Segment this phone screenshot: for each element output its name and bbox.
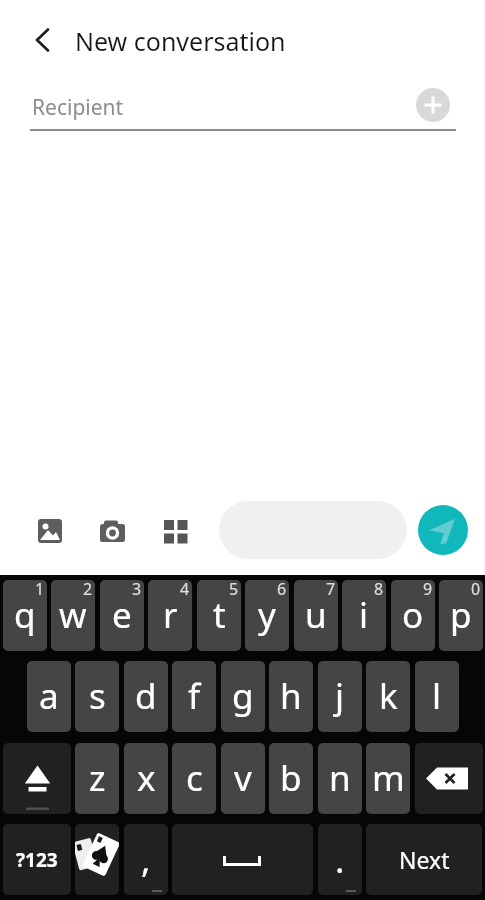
staticText: q: [14, 591, 36, 639]
staticText: b: [280, 754, 302, 802]
staticText: 4: [180, 580, 190, 600]
button[interactable]: [418, 505, 468, 555]
staticText: 2: [83, 580, 93, 600]
staticText: k: [379, 672, 398, 720]
staticText: n: [329, 754, 351, 802]
button[interactable]: i: [342, 580, 386, 651]
button[interactable]: g: [221, 661, 265, 732]
button[interactable]: [219, 501, 407, 559]
button[interactable]: ?123: [3, 824, 71, 895]
staticText: p: [450, 591, 472, 639]
staticText: d: [135, 672, 157, 720]
button[interactable]: r: [148, 580, 192, 651]
button[interactable]: c: [172, 743, 216, 814]
button[interactable]: v: [221, 743, 265, 814]
staticText: r: [163, 591, 178, 639]
staticText: z: [89, 754, 106, 802]
button[interactable]: .: [318, 824, 362, 895]
staticText: t: [213, 591, 226, 639]
staticText: ?123: [16, 847, 58, 873]
staticText: 9: [423, 580, 433, 600]
button[interactable]: [96, 515, 128, 547]
button[interactable]: t: [197, 580, 241, 651]
button[interactable]: f: [172, 661, 216, 732]
staticText: e: [112, 591, 132, 639]
button[interactable]: d: [124, 661, 168, 732]
staticText: 8: [374, 580, 384, 600]
staticText: New conversation: [75, 24, 286, 58]
staticText: s: [89, 672, 106, 720]
staticText: l: [432, 672, 442, 720]
button[interactable]: p: [439, 580, 483, 651]
button[interactable]: [75, 824, 119, 895]
button[interactable]: u: [294, 580, 338, 651]
staticText: x: [137, 754, 156, 802]
staticText: y: [258, 591, 276, 639]
button[interactable]: Recipient: [30, 82, 456, 130]
staticText: w: [59, 591, 87, 639]
staticText: h: [280, 672, 302, 720]
button[interactable]: l: [415, 661, 459, 732]
button[interactable]: [34, 515, 66, 547]
staticText: 7: [326, 580, 336, 600]
button[interactable]: o: [391, 580, 435, 651]
staticText: Recipient: [32, 93, 124, 122]
button[interactable]: Next: [366, 824, 482, 895]
staticText: 5: [229, 580, 239, 600]
staticText: g: [232, 672, 254, 720]
button[interactable]: e: [100, 580, 144, 651]
button[interactable]: s: [75, 661, 119, 732]
staticText: 1: [35, 580, 45, 600]
staticText: ,: [141, 836, 151, 884]
staticText: f: [188, 672, 201, 720]
button[interactable]: [28, 25, 58, 55]
staticText: j: [335, 672, 345, 720]
button[interactable]: z: [75, 743, 119, 814]
button[interactable]: [172, 824, 313, 895]
staticText: 6: [277, 580, 287, 600]
staticText: o: [402, 591, 424, 639]
staticText: m: [372, 754, 405, 802]
staticText: i: [359, 591, 369, 639]
staticText: c: [186, 754, 203, 802]
button[interactable]: n: [318, 743, 362, 814]
button[interactable]: m: [366, 743, 410, 814]
button[interactable]: ,: [124, 824, 168, 895]
staticText: 3: [132, 580, 142, 600]
button[interactable]: j: [318, 661, 362, 732]
staticText: u: [305, 591, 327, 639]
staticText: a: [39, 672, 59, 720]
staticText: .: [335, 836, 345, 884]
button[interactable]: w: [51, 580, 95, 651]
button[interactable]: k: [366, 661, 410, 732]
button[interactable]: q: [3, 580, 47, 651]
button[interactable]: x: [124, 743, 168, 814]
staticText: 0: [471, 580, 481, 600]
button[interactable]: y: [245, 580, 289, 651]
button[interactable]: [3, 743, 71, 814]
button[interactable]: a: [27, 661, 71, 732]
button[interactable]: [160, 515, 192, 547]
staticText: Next: [399, 844, 450, 875]
button[interactable]: h: [269, 661, 313, 732]
button[interactable]: [415, 743, 483, 814]
staticText: v: [234, 754, 252, 802]
button[interactable]: b: [269, 743, 313, 814]
button[interactable]: [416, 88, 450, 122]
